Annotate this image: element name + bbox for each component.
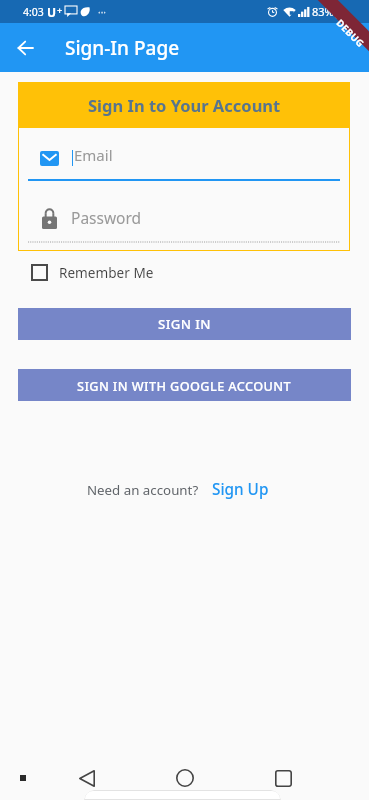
staticText: SIGN IN [158, 315, 211, 333]
staticText: Sign Up [212, 479, 269, 500]
button[interactable]: Remember Me [31, 263, 154, 282]
button[interactable]: Back [67, 758, 107, 798]
staticText: Need an account? [87, 481, 199, 499]
staticText: Remember Me [59, 263, 154, 282]
staticText: Sign-In Page [65, 35, 180, 61]
staticText: 83% [312, 4, 334, 19]
button[interactable]: SIGN IN [18, 308, 351, 340]
staticText: DEBUG [333, 16, 367, 50]
staticText: Sign In to Your Account [88, 94, 281, 116]
staticText: Password [71, 207, 142, 228]
button[interactable]: Sign Up [212, 479, 269, 500]
staticText: SIGN IN WITH GOOGLE ACCOUNT [77, 377, 292, 394]
staticText: 4:03 [23, 5, 44, 19]
button[interactable]: SIGN IN WITH GOOGLE ACCOUNT [18, 369, 351, 401]
button[interactable]: Back [0, 23, 50, 72]
staticText: + [57, 4, 63, 16]
staticText: Email [74, 145, 113, 165]
button[interactable]: Recents [263, 758, 303, 798]
staticText: ··· [98, 5, 107, 19]
staticText: U [47, 4, 57, 20]
button[interactable]: Home [165, 758, 205, 798]
